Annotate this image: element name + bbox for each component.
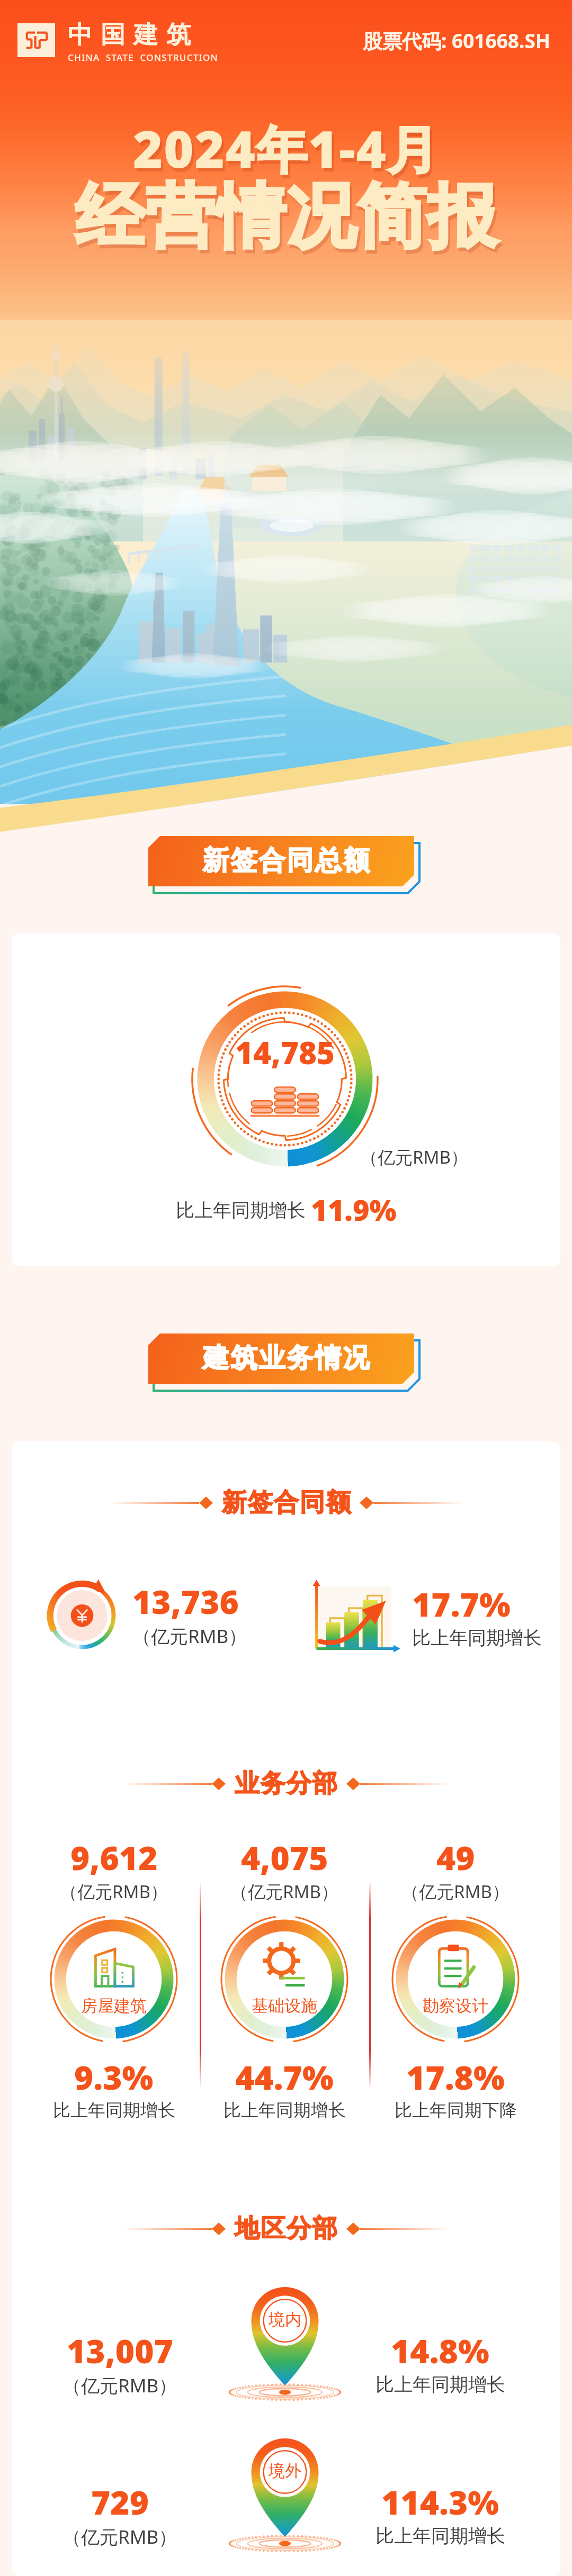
staticText: （亿元RMB） xyxy=(132,1623,247,1649)
staticText: 比上年同期增长 xyxy=(376,2373,505,2396)
staticText: 14.8% xyxy=(391,2328,489,2373)
staticText: 44.7% xyxy=(235,2055,334,2099)
staticText: 地区分部 xyxy=(234,2213,338,2244)
staticText: 新签合同额 xyxy=(221,1487,351,1518)
staticText: （亿元RMB） xyxy=(360,1145,468,1169)
staticText: 基础设施 xyxy=(252,1996,317,2016)
staticText: （亿元RMB） xyxy=(401,1880,510,1903)
staticText: （亿元RMB） xyxy=(62,2373,177,2398)
button[interactable]: 新签合同总额 xyxy=(148,836,424,892)
staticText: 114.3% xyxy=(381,2480,499,2524)
staticText: 729 xyxy=(91,2480,149,2524)
staticText: 比上年同期增长 xyxy=(412,1626,542,1649)
staticText: （亿元RMB） xyxy=(62,2524,177,2550)
staticText: 股票代码: 601668.SH xyxy=(363,27,551,54)
staticText: 经营情况简报 xyxy=(77,177,499,265)
staticText: 经营情况简报 xyxy=(75,174,497,261)
staticText: 13,007 xyxy=(67,2328,173,2373)
button[interactable]: 中国建筑 CSCEC xyxy=(17,17,219,64)
staticText: CHINA STATE CONSTRUCTION xyxy=(68,51,219,64)
staticText: 比上年同期下降 xyxy=(395,2099,517,2121)
staticText: 比上年同期增长 xyxy=(376,2524,505,2547)
staticText: 比上年同期增长 xyxy=(53,2099,175,2121)
staticText: 13,736 xyxy=(132,1579,239,1623)
staticText: 新签合同总额 xyxy=(202,844,370,877)
staticText: 9.3% xyxy=(74,2055,154,2099)
staticText: 2024年1-4月 xyxy=(135,117,442,186)
button[interactable]: 房屋建筑 xyxy=(50,1915,178,2043)
button[interactable]: 基础设施 xyxy=(220,1915,348,2043)
staticText: 业务分部 xyxy=(234,1768,338,1799)
staticText: 勘察设计 xyxy=(423,1996,488,2016)
staticText: 2024年1-4月 xyxy=(133,113,440,183)
staticText: 17.8% xyxy=(406,2055,505,2099)
staticText: 11.9% xyxy=(311,1190,397,1229)
staticText: 49 xyxy=(436,1835,475,1880)
staticText: （亿元RMB） xyxy=(60,1880,168,1903)
staticText: 建筑业务情况 xyxy=(202,1341,370,1375)
button[interactable]: 建筑业务情况 xyxy=(148,1334,424,1389)
staticText: 境外 xyxy=(269,2461,301,2481)
staticText: 比上年同期增长 xyxy=(224,2099,346,2121)
staticText: 17.7% xyxy=(412,1582,511,1626)
staticText: 比上年同期增长 xyxy=(176,1197,311,1222)
staticText: 9,612 xyxy=(70,1835,158,1880)
staticText: 境内 xyxy=(269,2309,301,2330)
button[interactable]: 勘察设计 xyxy=(391,1915,520,2043)
staticText: 14,785 xyxy=(235,1031,335,1073)
staticText: 4,075 xyxy=(241,1835,328,1880)
staticText: 房屋建筑 xyxy=(81,1996,147,2016)
staticText: （亿元RMB） xyxy=(230,1880,338,1903)
staticText: 中 国 建 筑 xyxy=(68,17,192,50)
